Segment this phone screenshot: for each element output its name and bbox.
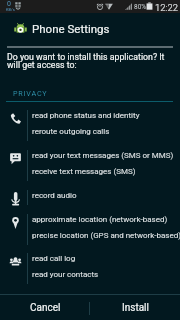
staticText: PRIVACY	[13, 89, 48, 97]
button[interactable]: approximate location (network-based), pr…	[0, 214, 180, 245]
staticText: read call log	[32, 254, 76, 263]
button[interactable]: Cancel	[0, 296, 90, 320]
staticText: KB/s	[6, 7, 15, 12]
staticText: Cancel	[30, 302, 61, 314]
staticText: read phone status and identity	[32, 111, 140, 120]
staticText: read your contacts	[32, 270, 99, 279]
staticText: Install	[122, 302, 149, 314]
button[interactable]: read your text messages (SMS or MMS), re…	[0, 150, 180, 181]
button[interactable]: read call log, read your contacts	[0, 253, 180, 284]
staticText: approximate location (network-based)	[32, 215, 168, 224]
staticText: will get access to:	[7, 60, 77, 70]
staticText: read your text messages (SMS or MMS)	[32, 151, 174, 160]
staticText: precise location (GPS and network-based)	[32, 231, 180, 240]
staticText: 12:22	[155, 2, 179, 13]
button[interactable]: Install	[90, 296, 180, 320]
staticText: 0	[7, 0, 11, 8]
staticText: receive text messages (SMS)	[32, 167, 136, 176]
staticText: Phone Settings	[32, 22, 110, 35]
staticText: 80%	[134, 3, 147, 11]
staticText: reroute outgoing calls	[32, 127, 110, 136]
button[interactable]: record audio	[0, 190, 180, 205]
staticText: Do you want to install this application?…	[7, 52, 165, 62]
staticText: record audio	[32, 191, 77, 200]
button[interactable]: read phone status and identity, reroute …	[0, 110, 180, 141]
